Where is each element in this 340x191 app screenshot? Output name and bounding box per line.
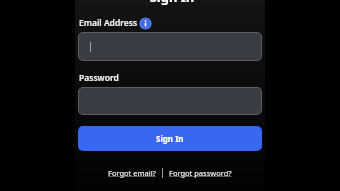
staticText: Sign In [156,133,184,144]
staticText: Password [79,72,119,84]
button[interactable] [78,32,262,61]
button[interactable]: Forgot email? [108,168,156,178]
staticText: Email Address [79,17,138,29]
button[interactable]: Sign In [78,126,262,151]
button[interactable]: Forgot password? [169,168,232,178]
staticText: Sign In [2,0,340,6]
button[interactable] [78,87,262,115]
button[interactable] [140,18,151,29]
